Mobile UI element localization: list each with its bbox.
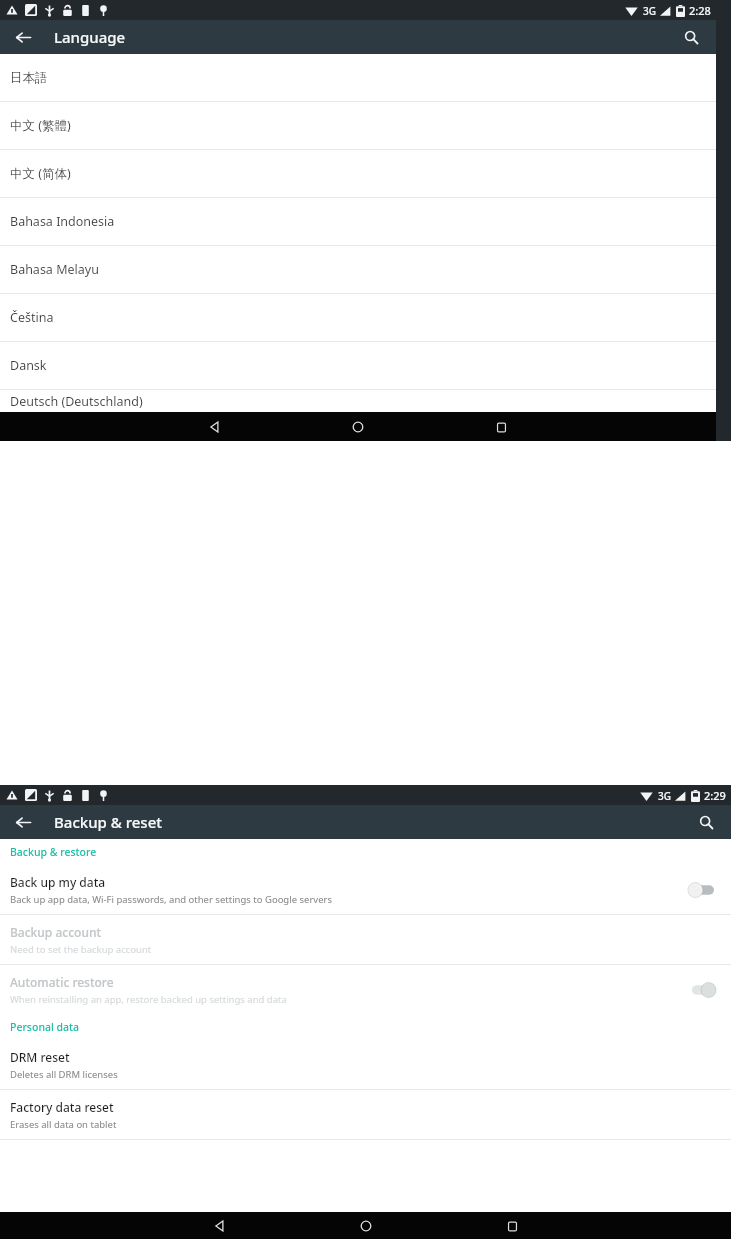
staticText: Language (54, 27, 126, 47)
staticText: 3G (658, 789, 671, 803)
staticText: Deletes all DRM licenses (10, 1068, 118, 1081)
button[interactable]: Backup account (0, 915, 731, 964)
button[interactable]: Factory data reset (0, 1090, 731, 1139)
button[interactable]: 中文 (简体) (0, 150, 716, 198)
staticText: Automatic restore (10, 974, 114, 990)
staticText: When reinstalling an app, restore backed… (10, 993, 287, 1006)
staticText: Deutsch (Deutschland) (10, 393, 143, 410)
button[interactable]: Back (8, 807, 38, 837)
staticText: 3G (643, 4, 656, 18)
button[interactable]: Back up my data (0, 865, 731, 914)
button[interactable]: Toggle (687, 881, 717, 899)
staticText: Backup account (10, 924, 102, 940)
staticText: DRM reset (10, 1049, 70, 1065)
button[interactable]: 中文 (繁體) (0, 102, 716, 150)
button[interactable]: Dansk (0, 342, 716, 390)
button[interactable]: Toggle (687, 981, 717, 999)
staticText: Backup & reset (54, 812, 163, 832)
staticText: 中文 (简体) (10, 165, 71, 182)
button[interactable]: Home (345, 414, 371, 440)
button[interactable]: Home (353, 1213, 379, 1239)
button[interactable]: Recent apps (499, 1213, 525, 1239)
staticText: 日本語 (10, 70, 48, 86)
button[interactable]: Bahasa Melayu (0, 246, 716, 294)
staticText: Need to set the backup account (10, 943, 152, 956)
staticText: Back up my data (10, 874, 106, 890)
button[interactable]: Search (691, 807, 721, 837)
button[interactable]: Back (8, 22, 38, 52)
staticText: Dansk (10, 357, 47, 374)
staticText: Erases all data on tablet (10, 1118, 117, 1131)
button[interactable]: Automatic restore (0, 965, 731, 1014)
staticText: Personal data (10, 1020, 80, 1034)
button[interactable]: Deutsch (Deutschland) (0, 390, 716, 413)
staticText: Bahasa Indonesia (10, 213, 115, 230)
button[interactable]: Čeština (0, 294, 716, 342)
button[interactable]: DRM reset (0, 1040, 731, 1089)
staticText: Bahasa Melayu (10, 261, 99, 278)
staticText: Čeština (10, 309, 54, 326)
button[interactable]: Recent apps (488, 414, 514, 440)
staticText: Backup & restore (10, 845, 97, 859)
staticText: 2:29 (704, 788, 726, 803)
button[interactable]: 日本語 (0, 54, 716, 102)
staticText: Factory data reset (10, 1099, 114, 1115)
button[interactable]: Back (202, 414, 228, 440)
button[interactable]: Back (207, 1213, 233, 1239)
staticText: 2:28 (689, 3, 711, 18)
button[interactable]: Search (676, 22, 706, 52)
staticText: Back up app data, Wi-Fi passwords, and o… (10, 893, 332, 906)
button[interactable]: Bahasa Indonesia (0, 198, 716, 246)
staticText: 中文 (繁體) (10, 117, 71, 134)
